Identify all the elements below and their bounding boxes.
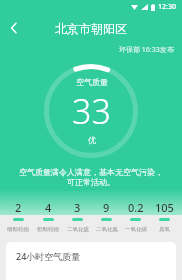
button[interactable]: 2: [3, 200, 33, 233]
staticText: 0.2: [128, 200, 144, 215]
button[interactable]: 4: [33, 200, 63, 233]
staticText: 一氧化碳: [125, 226, 147, 233]
staticText: 二氧化硫: [67, 226, 89, 233]
staticText: 12:30: [158, 2, 176, 12]
button[interactable]: 9: [92, 200, 121, 233]
staticText: 粗颗粒物: [37, 226, 59, 233]
staticText: 105: [155, 200, 174, 215]
staticText: 空气质量: [76, 77, 108, 87]
staticText: 二氧化氮: [96, 226, 118, 233]
button[interactable]: 3: [63, 200, 92, 233]
staticText: 4: [45, 200, 52, 215]
staticText: 细颗粒物: [7, 226, 29, 233]
button[interactable]: 0.2: [121, 200, 150, 233]
button[interactable]: 105: [150, 200, 179, 233]
button[interactable]: 24小时空气质量: [6, 242, 176, 280]
staticText: 北京市朝阳区: [55, 21, 127, 36]
staticText: 24小时空气质量: [16, 250, 81, 262]
staticText: 2: [15, 200, 22, 215]
button[interactable]: Back: [0, 14, 28, 42]
staticText: 33: [72, 88, 111, 134]
staticText: 优: [88, 135, 96, 145]
staticText: 9: [103, 200, 110, 215]
staticText: 臭氧: [159, 226, 170, 233]
staticText: 3: [74, 200, 81, 215]
staticText: 空气质量满令人满意，基本无空气污染，可正常活动。: [18, 167, 164, 188]
staticText: 环保部 16:33发布: [119, 45, 174, 55]
